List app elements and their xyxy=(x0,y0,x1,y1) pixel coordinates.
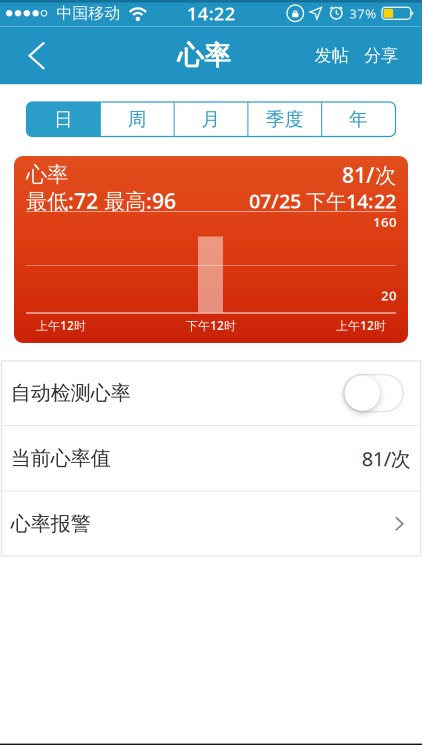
staticText: 周 xyxy=(128,108,147,131)
button[interactable]: 自动检测心率 xyxy=(1,361,421,425)
button[interactable]: 年 xyxy=(322,102,395,136)
staticText: 07/25 下午14:22 xyxy=(249,187,396,214)
staticText: 37% xyxy=(349,4,376,22)
button[interactable]: 自动检测心率开关 xyxy=(344,375,403,412)
button[interactable]: 季度 xyxy=(248,102,322,136)
button[interactable]: 发帖 xyxy=(314,29,348,82)
staticText: 日 xyxy=(54,108,73,131)
staticText: 14:22 xyxy=(186,1,235,26)
staticText: 分享 xyxy=(364,45,398,66)
button[interactable]: 心率报警 xyxy=(1,492,421,556)
staticText: 年 xyxy=(349,108,368,131)
button[interactable]: 月 xyxy=(174,102,248,136)
button[interactable]: 周 xyxy=(100,102,174,136)
button[interactable]: 当前心率值 xyxy=(1,426,421,491)
staticText: 81/次 xyxy=(362,445,411,472)
staticText: 20 xyxy=(381,286,397,304)
staticText: 81/次 xyxy=(342,160,396,189)
staticText: 自动检测心率 xyxy=(11,381,131,405)
staticText: 上午12时 xyxy=(336,317,386,333)
staticText: 当前心率值 xyxy=(11,446,111,471)
button[interactable]: 分享 xyxy=(348,29,422,82)
staticText: 心率 xyxy=(26,162,68,188)
staticText: 下午12时 xyxy=(186,317,236,333)
staticText: 最低:72 最高:96 xyxy=(26,186,176,215)
staticText: 中国移动 xyxy=(56,3,120,23)
button[interactable]: 日 xyxy=(26,102,100,136)
staticText: 季度 xyxy=(266,108,304,131)
staticText: 上午12时 xyxy=(36,317,86,333)
staticText: 发帖 xyxy=(314,45,348,66)
staticText: 月 xyxy=(201,108,220,131)
staticText: 心率报警 xyxy=(11,511,91,536)
staticText: 心率 xyxy=(177,39,231,72)
staticText: 160 xyxy=(373,213,397,231)
button[interactable]: 返回 xyxy=(0,27,46,83)
